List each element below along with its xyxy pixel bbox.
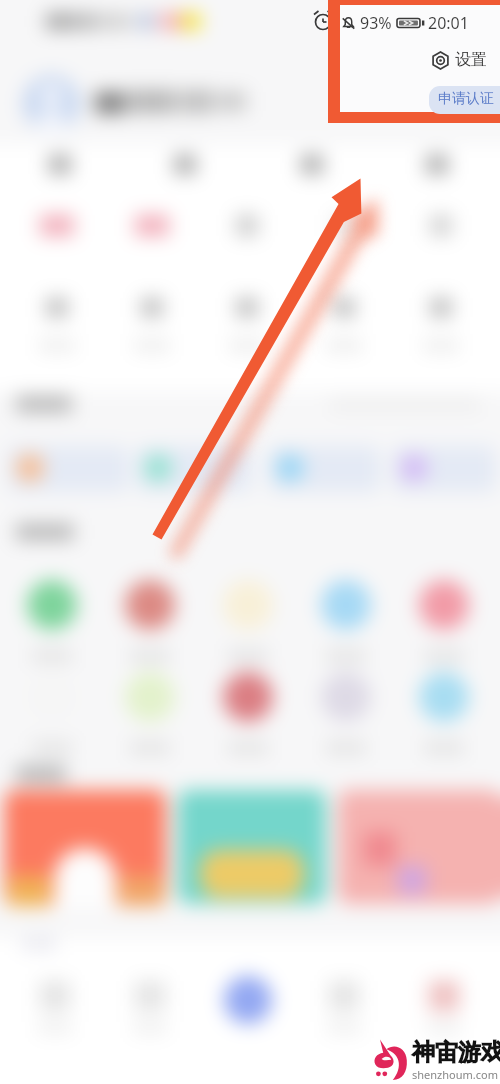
button[interactable]: Settings [431, 50, 487, 70]
staticText: 设置 [455, 50, 487, 70]
staticText: 93% [360, 12, 392, 34]
button[interactable]: 申请认证 [429, 86, 500, 114]
staticText: shenzhoum.com [412, 1067, 498, 1082]
staticText: 20:01 [428, 12, 469, 34]
staticText: 神宙游戏 [412, 1038, 500, 1067]
staticText: 申请认证 [438, 90, 494, 108]
